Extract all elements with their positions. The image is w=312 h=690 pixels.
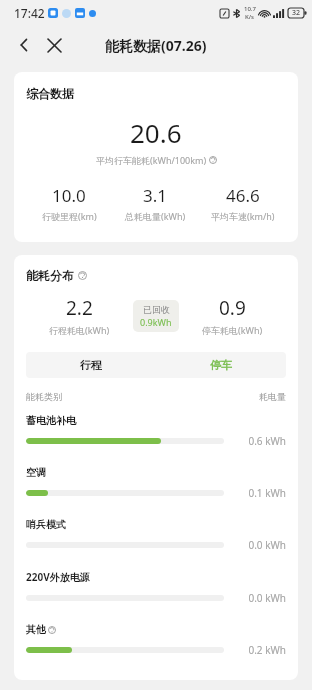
staticText: 0.6 kWh [224, 434, 286, 448]
button[interactable]: 哨兵模式 [26, 518, 286, 552]
staticText: 平均车速(km/h) [211, 210, 275, 222]
staticText: 其他 [26, 623, 46, 636]
button[interactable]: 停车 [156, 352, 286, 378]
staticText: 耗电量 [259, 391, 286, 402]
staticText: 3.1 [143, 184, 168, 207]
staticText: 能耗数据(07.26) [105, 36, 207, 55]
staticText: 17:42 [14, 5, 45, 21]
staticText: 220V外放电源 [26, 570, 90, 584]
button[interactable]: Close [40, 31, 68, 59]
staticText: 行程耗电(kWh) [49, 324, 110, 336]
staticText: 2.2 [66, 295, 93, 321]
button[interactable]: 空调 [26, 466, 286, 500]
staticText: 行程 [80, 358, 102, 372]
staticText: 0.2 kWh [224, 643, 286, 657]
staticText: 0.0 kWh [224, 538, 286, 552]
staticText: 总耗电量(kWh) [125, 210, 186, 222]
staticText: K/s [245, 13, 255, 21]
button[interactable]: 220V外放电源 [26, 570, 286, 605]
staticText: 0.1 kWh [224, 486, 286, 500]
staticText: 停车耗电(kWh) [202, 324, 263, 336]
staticText: 能耗类别 [26, 391, 62, 402]
button[interactable]: 其他 [26, 623, 286, 657]
staticText: 哨兵模式 [26, 518, 66, 531]
staticText: 平均行车能耗(kWh/100km) [96, 154, 207, 166]
staticText: 0.9kWh [140, 316, 172, 328]
staticText: 20.6 [130, 115, 182, 150]
staticText: 0.9 [219, 295, 246, 321]
staticText: 蓄电池补电 [26, 414, 76, 427]
staticText: 综合数据 [26, 86, 74, 101]
staticText: 10.7 [244, 5, 256, 13]
staticText: 停车 [210, 358, 232, 372]
staticText: 0.0 kWh [224, 591, 286, 605]
staticText: 能耗分布 [26, 268, 74, 283]
staticText: 10.0 [52, 184, 86, 207]
staticText: 32 [292, 8, 301, 18]
staticText: 46.6 [226, 184, 260, 207]
button[interactable]: Back [10, 31, 38, 59]
button[interactable]: 蓄电池补电 [26, 414, 286, 448]
staticText: 已回收 [143, 304, 170, 315]
staticText: 空调 [26, 466, 46, 479]
staticText: 行驶里程(km) [42, 210, 97, 222]
button[interactable]: 行程 [26, 352, 156, 378]
